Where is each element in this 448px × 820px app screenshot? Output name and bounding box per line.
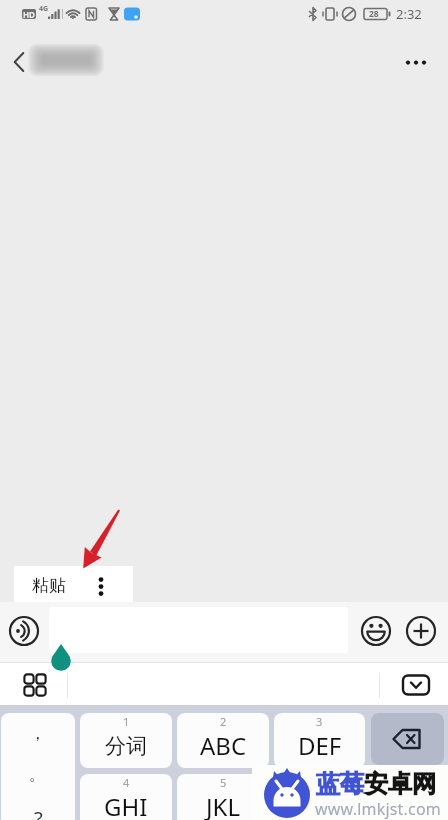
button[interactable] — [371, 774, 444, 820]
button[interactable]: Hide keyboard — [402, 671, 430, 699]
button[interactable]: 6 — [274, 774, 365, 820]
staticText: 2:32 — [396, 5, 422, 23]
button[interactable]: 1 — [80, 713, 172, 768]
staticText: HD — [23, 9, 35, 20]
button[interactable]: 2 — [177, 713, 269, 768]
staticText: 1 — [123, 714, 130, 729]
button[interactable]: Backspace — [371, 713, 444, 765]
staticText: 4 — [123, 775, 130, 790]
button[interactable] — [49, 607, 348, 653]
staticText: 6 — [316, 775, 323, 790]
staticText: www.lmkjst.com — [315, 798, 441, 820]
staticText: 3 — [316, 714, 323, 729]
staticText: 2 — [220, 714, 227, 729]
staticText: 5 — [220, 775, 227, 790]
button[interactable]: Input methods — [21, 671, 49, 699]
staticText: 安卓网 — [364, 769, 436, 799]
staticText: 粘贴 — [32, 575, 66, 596]
staticText: 4G — [39, 4, 49, 14]
button[interactable]: 粘贴 — [14, 566, 133, 606]
button[interactable]: ， — [1, 713, 75, 820]
staticText: DEF — [298, 729, 342, 762]
button[interactable]: Voice input — [5, 612, 43, 650]
button[interactable]: More options — [394, 41, 438, 85]
staticText: 。 — [29, 764, 46, 785]
button[interactable]: Emoji — [357, 612, 395, 650]
staticText: MNO — [290, 790, 349, 820]
button[interactable]: Back — [0, 40, 44, 84]
button[interactable]: 3 — [274, 713, 365, 768]
staticText: ? — [34, 805, 43, 820]
staticText: 蓝莓 — [316, 769, 364, 799]
staticText: 分词 — [105, 733, 147, 759]
staticText: JKL — [206, 790, 240, 820]
button[interactable]: 5 — [177, 774, 269, 820]
staticText: ， — [29, 723, 46, 744]
staticText: 28 — [369, 8, 379, 20]
button[interactable]: Add attachment — [402, 612, 440, 650]
staticText: GHI — [104, 790, 148, 820]
staticText: ABC — [200, 729, 247, 762]
button[interactable]: 4 — [80, 774, 172, 820]
